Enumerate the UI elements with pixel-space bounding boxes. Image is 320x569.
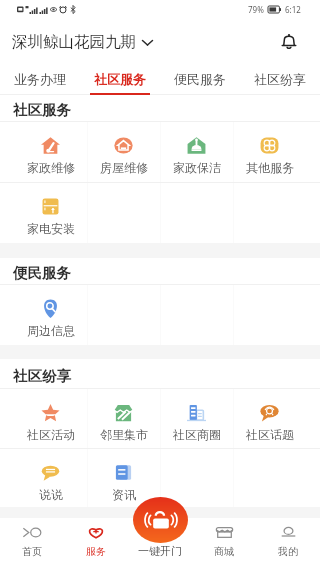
button[interactable]: 家政维修 — [14, 122, 87, 182]
staticText: 商城 — [214, 545, 234, 558]
staticText: 社区服务 — [94, 71, 146, 87]
button[interactable]: 家电安装 — [14, 183, 87, 243]
button[interactable]: 社区商圈 — [160, 389, 233, 448]
button[interactable]: 社区服务 — [80, 58, 160, 95]
staticText: 社区纷享 — [13, 367, 71, 385]
button[interactable]: 说说 — [14, 449, 87, 507]
staticText: 社区话题 — [246, 427, 294, 442]
staticText: 6:12 — [285, 4, 301, 15]
button[interactable]: 社区活动 — [14, 389, 87, 448]
staticText: 深圳鲸山花园九期 — [12, 32, 136, 52]
staticText: 便民服务 — [13, 264, 71, 282]
staticText: 社区纷享 — [254, 71, 306, 87]
button[interactable]: 业务办理 — [0, 58, 80, 95]
staticText: 说说 — [39, 487, 63, 502]
button[interactable]: 首页 — [0, 518, 64, 569]
button[interactable]: 邻里集市 — [87, 389, 160, 448]
staticText: 首页 — [22, 545, 42, 558]
staticText: 便民服务 — [174, 71, 226, 87]
staticText: 79% — [248, 4, 264, 15]
staticText: 资讯 — [112, 487, 136, 502]
button[interactable]: 便民服务 — [160, 58, 240, 95]
button[interactable]: Notifications — [278, 30, 300, 52]
staticText: 邻里集市 — [100, 427, 148, 442]
button[interactable]: 服务 — [64, 518, 128, 569]
staticText: 服务 — [86, 545, 106, 558]
button[interactable]: 一键开门 — [133, 497, 188, 543]
staticText: 社区活动 — [27, 427, 75, 442]
button[interactable]: 一键开门 — [128, 518, 192, 569]
staticText: 一键开门 — [138, 544, 182, 558]
button[interactable]: 社区话题 — [233, 389, 306, 448]
staticText: 家电安装 — [27, 221, 75, 236]
staticText: 社区服务 — [13, 101, 71, 119]
staticText: 业务办理 — [14, 71, 66, 87]
staticText: 我的 — [278, 545, 298, 558]
button[interactable]: 深圳鲸山花园九期 — [0, 32, 161, 52]
button[interactable]: 周边信息 — [14, 285, 87, 345]
button[interactable]: 家政保洁 — [160, 122, 233, 182]
staticText: 其他服务 — [246, 160, 294, 175]
button[interactable]: 我的 — [256, 518, 320, 569]
staticText: 社区商圈 — [173, 427, 221, 442]
button[interactable]: 社区纷享 — [240, 58, 320, 95]
button[interactable]: 资讯 — [87, 449, 160, 507]
button[interactable]: 其他服务 — [233, 122, 306, 182]
staticText: 家政维修 — [27, 160, 75, 175]
staticText: 家政保洁 — [173, 160, 221, 175]
staticText: 周边信息 — [27, 323, 75, 338]
button[interactable]: 商城 — [192, 518, 256, 569]
staticText: 房屋维修 — [100, 160, 148, 175]
button[interactable]: 房屋维修 — [87, 122, 160, 182]
